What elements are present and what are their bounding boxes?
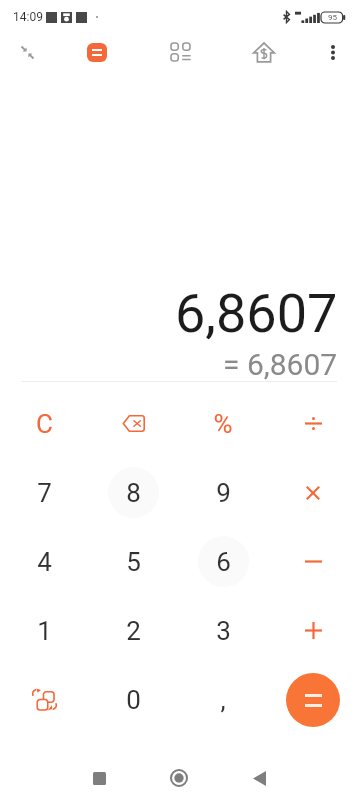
staticText: 1 [37,616,52,646]
button[interactable]: 4 [0,527,89,596]
staticText: 14:09 [13,10,43,24]
button[interactable]: Mortgage [236,31,292,73]
button[interactable] [0,665,89,734]
button[interactable]: , [178,665,268,734]
staticText: % [213,409,233,439]
button[interactable]: Recent apps [59,755,139,800]
button[interactable]: Back [219,755,299,800]
staticText: 6,8607 [175,282,338,345]
button[interactable] [268,389,358,458]
staticText: 8 [126,478,141,508]
staticText: 95 [328,13,337,22]
button[interactable]: Collapse [0,31,54,73]
staticText: = 6,8607 [223,347,338,382]
button[interactable]: Home [139,755,219,800]
button[interactable] [89,389,178,458]
button[interactable]: 9 [178,458,268,527]
button[interactable]: 0 [89,665,178,734]
button[interactable]: List view [152,31,209,73]
button[interactable]: 2 [89,596,178,665]
button[interactable]: 1 [0,596,89,665]
staticText: 7 [37,478,52,508]
button[interactable]: 7 [0,458,89,527]
button[interactable]: Calculator [69,31,125,73]
staticText: 0 [126,685,141,715]
staticText: C [36,409,53,439]
button[interactable] [268,527,358,596]
staticText: 9 [216,478,231,508]
staticText: 6 [216,547,231,577]
button[interactable]: Equals [286,673,340,727]
staticText: 5 [126,547,141,577]
button[interactable]: 8 [89,458,178,527]
button[interactable]: More options [310,31,356,73]
staticText: 2 [126,616,141,646]
staticText: 3 [216,616,231,646]
button[interactable]: 3 [178,596,268,665]
staticText: , [220,685,226,715]
button[interactable]: 5 [89,527,178,596]
button[interactable]: % [178,389,268,458]
button[interactable]: C [0,389,89,458]
button[interactable] [268,458,358,527]
button[interactable]: 6 [178,527,268,596]
button[interactable] [268,596,358,665]
staticText: 4 [37,547,52,577]
